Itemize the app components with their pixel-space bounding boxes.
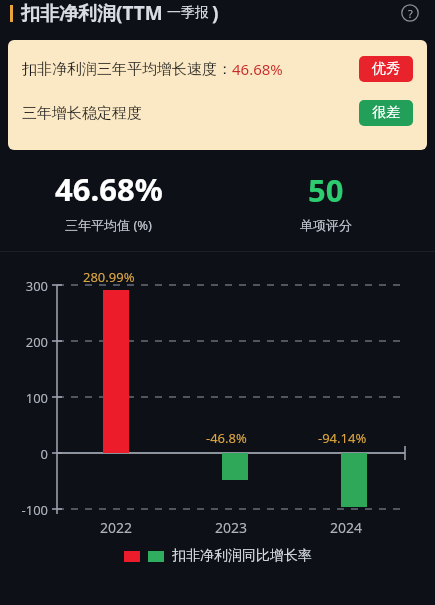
staticText: ? [408,6,413,21]
staticText: 很差 [372,104,400,122]
staticText: 50 [308,169,344,211]
staticText: 一季报 [167,4,209,22]
staticText: 280.99% [83,268,135,286]
staticText: 46.68% [232,59,283,79]
staticText: 单项评分 [300,217,352,233]
staticText: 0 [0,445,48,463]
staticText: 300 [0,277,48,295]
staticText: -100 [0,501,48,519]
staticText: -94.14% [318,429,367,447]
staticText: 2022 [86,518,146,537]
staticText: 扣非净利润(TTM [21,0,163,26]
staticText: 100 [0,389,48,407]
button[interactable]: 很差 [359,100,413,126]
staticText: 优秀 [372,60,400,78]
staticText: 扣非净利润三年平均增长速度： [22,60,232,79]
staticText: 三年平均值 (%) [65,216,152,234]
button[interactable]: Help [397,0,423,26]
staticText: 200 [0,333,48,351]
staticText: 2023 [201,518,261,537]
staticText: ) [212,0,219,26]
staticText: 46.68% [55,168,163,210]
staticText: 2024 [316,518,376,537]
staticText: 三年增长稳定程度 [22,104,142,123]
button[interactable]: 优秀 [359,56,413,82]
staticText: -46.8% [206,429,247,447]
staticText: 扣非净利润同比增长率 [172,547,312,565]
